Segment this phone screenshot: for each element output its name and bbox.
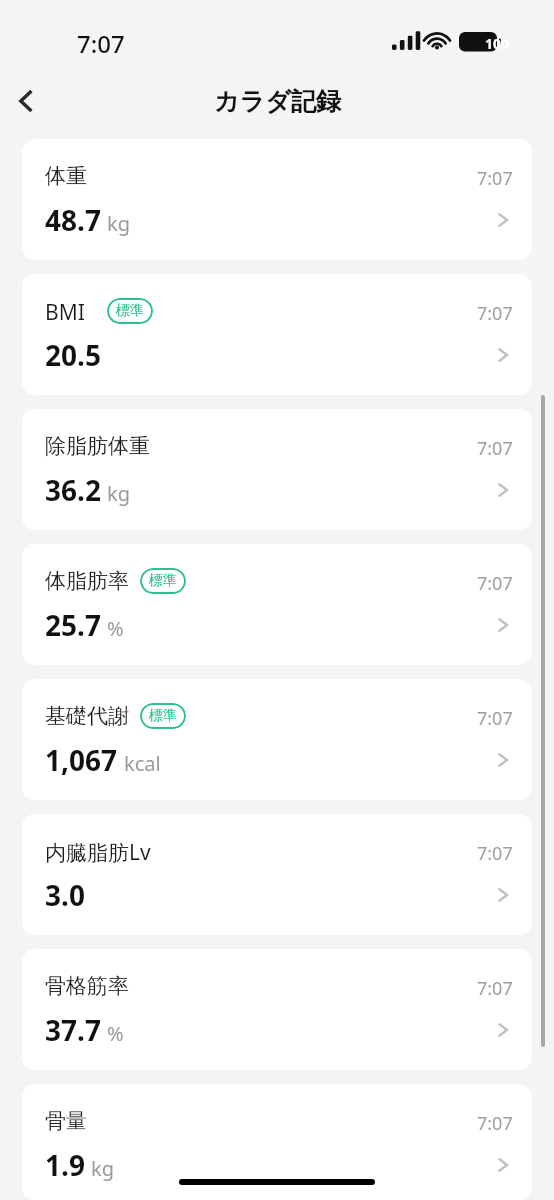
staticText: 体脂肪率 [45,568,129,594]
staticText: 20.5 [45,336,101,374]
staticText: 標準 [116,302,144,320]
staticText: kg [107,480,130,507]
staticText: 標準 [149,572,177,590]
staticText: 体重 [45,163,87,189]
button[interactable]: BMI [22,274,532,395]
staticText: 内臓脂肪Lv [45,838,151,867]
staticText: BMI [45,298,85,327]
button[interactable]: Back [2,77,50,125]
staticText: 37.7 [45,1011,101,1049]
staticText: kcal [124,750,161,777]
button[interactable]: 除脂肪体重 [22,409,532,530]
button[interactable]: 骨格筋率 [22,949,532,1070]
button[interactable]: 体重 [22,139,532,260]
staticText: 7:07 [477,1111,513,1136]
staticText: 7:07 [477,166,513,191]
staticText: 7:07 [477,571,513,596]
staticText: 7:07 [477,976,513,1001]
button[interactable]: 体脂肪率 [22,544,532,665]
staticText: % [107,1020,124,1047]
staticText: % [107,615,124,642]
staticText: kg [91,1155,114,1182]
staticText: 標準 [149,707,177,725]
staticText: 基礎代謝 [45,703,129,729]
staticText: 7:07 [477,706,513,731]
staticText: kg [107,210,130,237]
staticText: 48.7 [45,201,101,239]
staticText: 骨量 [45,1108,87,1134]
staticText: 100 [485,34,510,53]
staticText: 25.7 [45,606,101,644]
staticText: 3.0 [45,876,85,914]
staticText: 7:07 [477,301,513,326]
staticText: カラダ記録 [214,86,341,117]
staticText: 1,067 [45,741,118,779]
staticText: 7:07 [477,841,513,866]
staticText: 骨格筋率 [45,973,129,999]
button[interactable]: 骨量 [22,1084,532,1200]
button[interactable]: 内臓脂肪Lv [22,814,532,935]
staticText: 1.9 [45,1146,85,1184]
staticText: 36.2 [45,471,101,509]
staticText: 7:07 [77,27,125,60]
staticText: 除脂肪体重 [45,433,150,459]
button[interactable]: 基礎代謝 [22,679,532,800]
staticText: 7:07 [477,436,513,461]
